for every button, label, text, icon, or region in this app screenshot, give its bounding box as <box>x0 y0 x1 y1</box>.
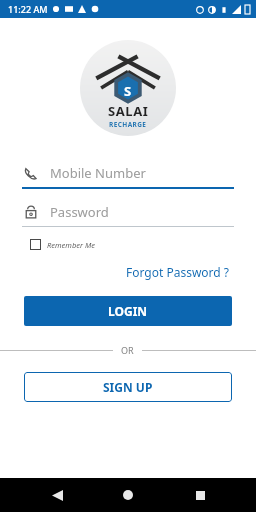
button[interactable]: Mobile Number <box>22 164 234 189</box>
button[interactable]: Home <box>113 480 143 510</box>
button[interactable]: Remember Me <box>30 239 95 250</box>
staticText: Password <box>50 203 109 221</box>
button[interactable]: SIGN UP <box>24 372 232 402</box>
staticText: Mobile Number <box>50 164 146 182</box>
staticText: SIGN UP <box>103 379 153 395</box>
staticText: OR <box>121 344 134 356</box>
button[interactable]: Back <box>42 480 72 510</box>
staticText: RECHARGE <box>109 120 147 129</box>
button[interactable]: Recent apps <box>185 480 215 510</box>
staticText: Remember Me <box>47 240 95 250</box>
staticText: Forgot Password ? <box>126 264 230 280</box>
button[interactable]: Forgot Password ? <box>122 260 234 284</box>
staticText: S <box>124 82 132 100</box>
staticText: SALAI <box>108 102 149 120</box>
staticText: 11:22 AM <box>8 3 48 15</box>
button[interactable]: Password <box>22 203 234 227</box>
button[interactable]: LOGIN <box>24 296 232 326</box>
staticText: LOGIN <box>108 303 148 319</box>
